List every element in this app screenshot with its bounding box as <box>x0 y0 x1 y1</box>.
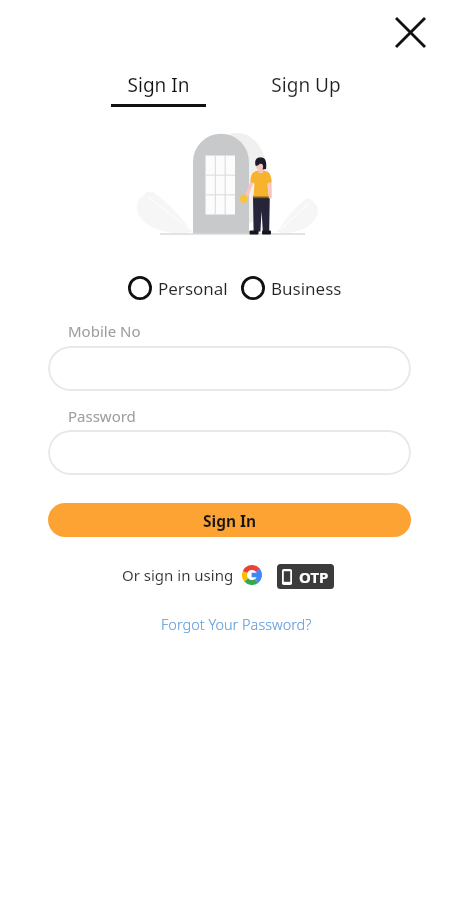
staticText: Sign In <box>111 72 206 98</box>
staticText: Mobile No <box>68 321 141 341</box>
button[interactable]: Close <box>388 10 433 55</box>
button[interactable] <box>48 346 411 391</box>
button[interactable]: Sign Up <box>255 66 357 100</box>
staticText: Or sign in using <box>122 565 234 585</box>
staticText: Sign Up <box>255 72 357 98</box>
staticText: OTP <box>299 567 329 587</box>
button[interactable]: Business <box>241 276 342 300</box>
button[interactable]: Sign In <box>48 503 411 537</box>
button[interactable]: Personal <box>128 276 228 300</box>
button[interactable]: Forgot Your Password? <box>155 612 318 636</box>
button[interactable]: Sign in with Google <box>241 564 263 586</box>
staticText: Business <box>271 277 342 300</box>
button[interactable]: Sign In <box>111 66 206 108</box>
staticText: Personal <box>158 277 228 300</box>
staticText: Sign In <box>203 510 257 531</box>
button[interactable] <box>48 430 411 475</box>
button[interactable]: OTP <box>277 564 334 589</box>
staticText: Password <box>68 406 136 426</box>
